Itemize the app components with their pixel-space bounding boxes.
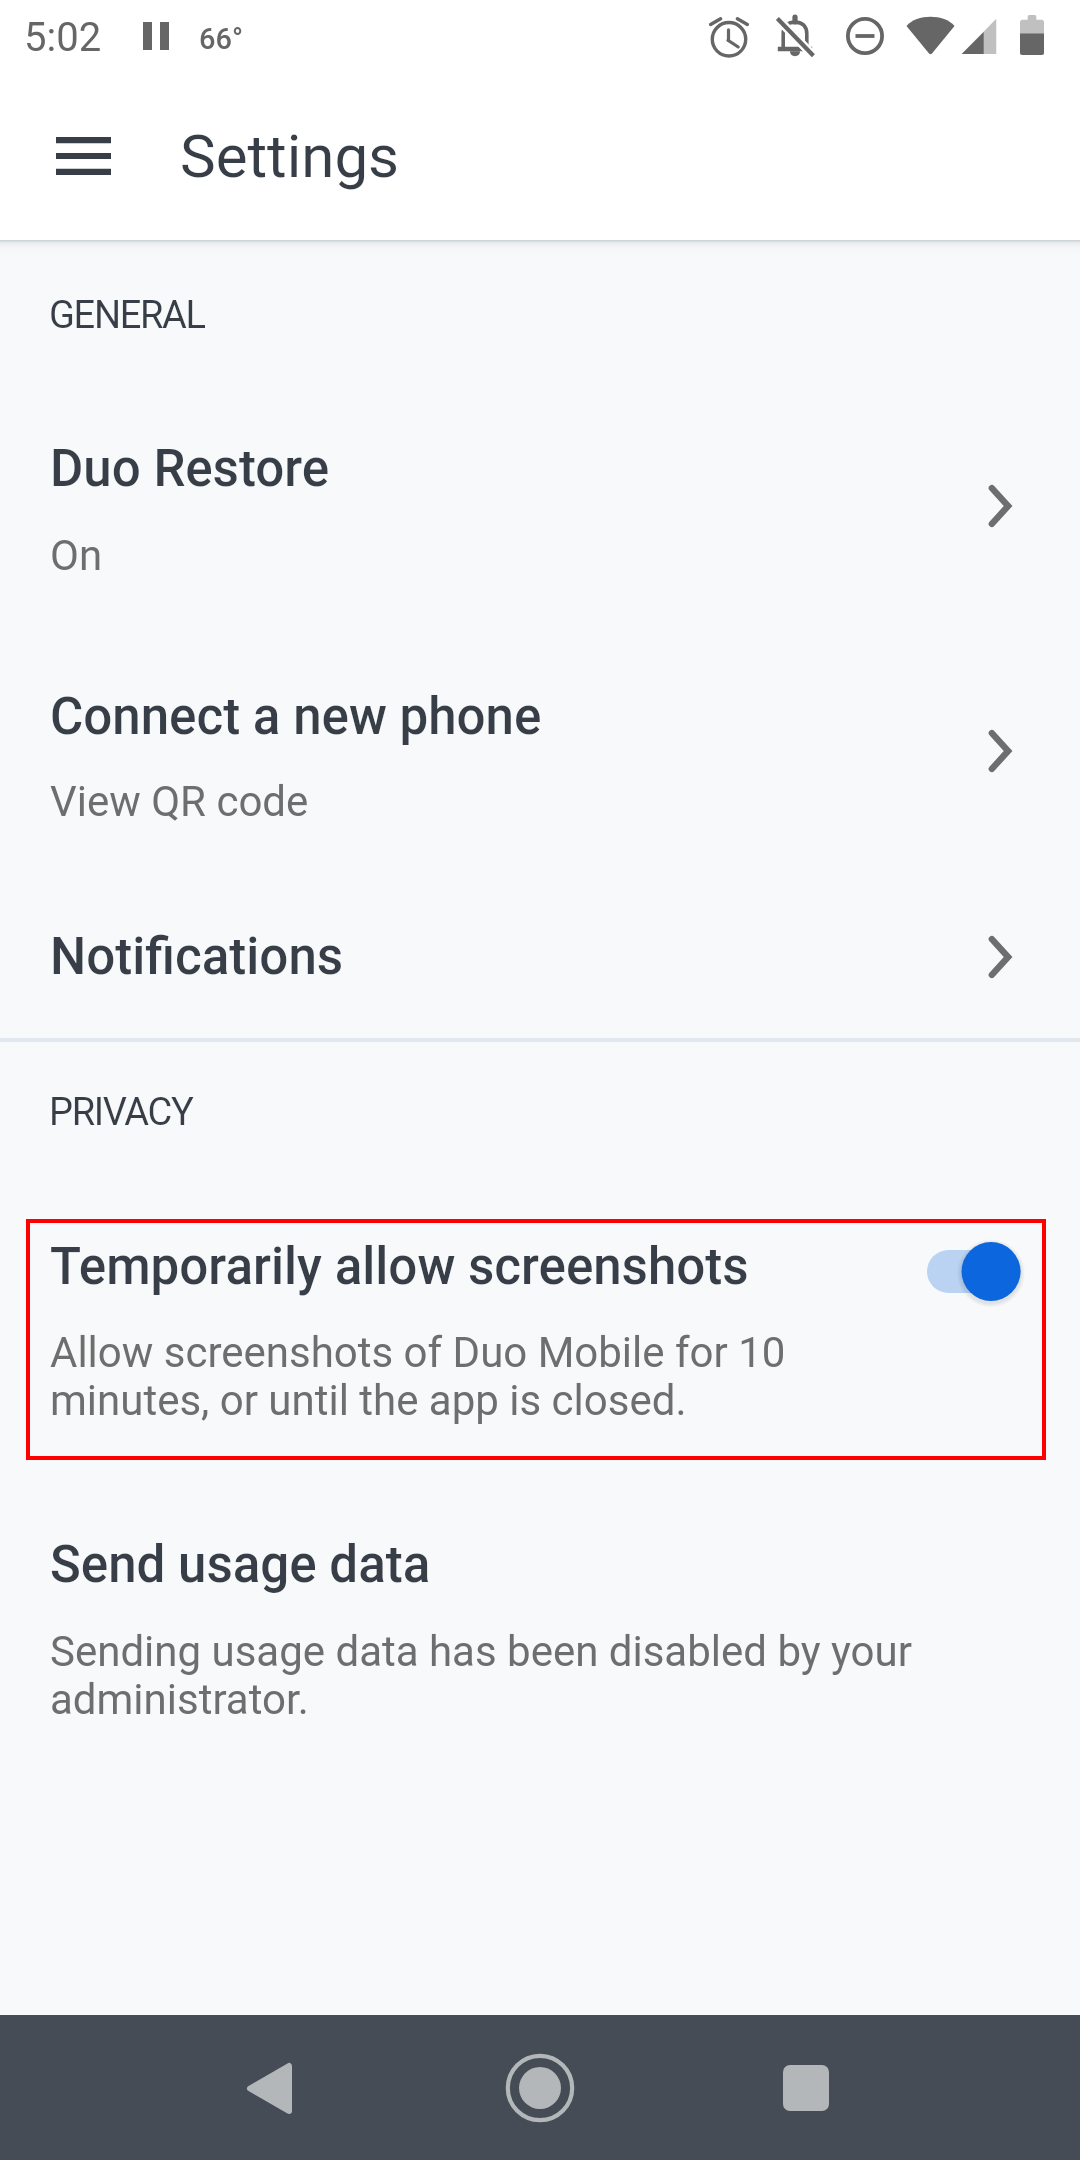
button[interactable]: Back bbox=[221, 2040, 317, 2136]
button[interactable] bbox=[26, 1219, 1046, 1460]
staticText: Notifications bbox=[50, 927, 344, 987]
button[interactable]: Recent apps bbox=[758, 2040, 854, 2136]
staticText: Duo Restore bbox=[50, 439, 330, 499]
staticText: On bbox=[50, 531, 103, 580]
button[interactable] bbox=[0, 1480, 1080, 1710]
staticText: Settings bbox=[180, 121, 400, 191]
staticText: Send usage data bbox=[50, 1535, 431, 1595]
button[interactable]: Open bbox=[956, 462, 1044, 550]
button[interactable]: Home bbox=[492, 2040, 588, 2136]
staticText: 5:02 bbox=[24, 14, 102, 61]
staticText: GENERAL bbox=[49, 293, 205, 338]
button[interactable]: Open bbox=[956, 913, 1044, 1001]
button[interactable] bbox=[0, 625, 1080, 855]
staticText: Temporarily allow screenshots bbox=[50, 1237, 749, 1297]
button[interactable]: Open navigation menu bbox=[39, 111, 128, 200]
button[interactable] bbox=[0, 380, 1080, 610]
button[interactable]: Temporarily allow screenshots toggle bbox=[912, 1222, 1022, 1322]
staticText: Connect a new phone bbox=[50, 687, 542, 747]
staticText: Sending usage data has been disabled by … bbox=[50, 1627, 912, 1724]
staticText: View QR code bbox=[50, 777, 309, 826]
button[interactable]: Open bbox=[956, 707, 1044, 795]
staticText: PRIVACY bbox=[49, 1090, 193, 1135]
staticText: Allow screenshots of Duo Mobile for 10 m… bbox=[50, 1328, 786, 1425]
button[interactable] bbox=[0, 880, 1080, 1030]
staticText: 66° bbox=[199, 22, 243, 56]
